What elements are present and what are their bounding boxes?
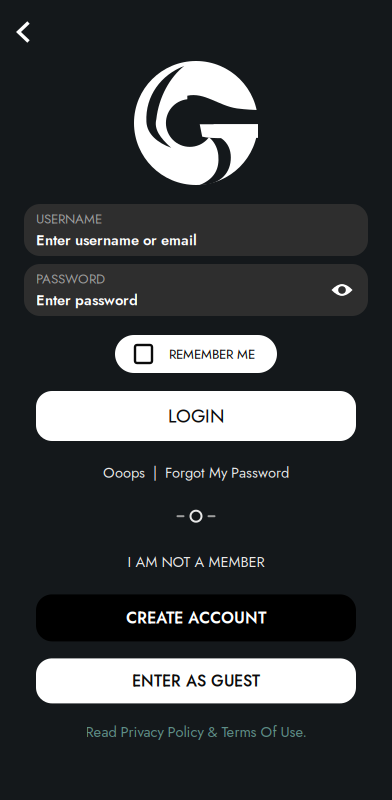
staticText: Enter password [36,289,138,311]
button[interactable]: CREATE ACCOUNT [36,594,356,641]
staticText: I AM NOT A MEMBER [127,551,264,572]
button[interactable]: Back [0,14,42,50]
staticText: ENTER AS GUEST [132,669,260,692]
staticText: Read Privacy Policy & Terms Of Use. [85,721,306,743]
staticText: Enter username or email [36,229,197,251]
staticText: Ooops | Forgot My Password [103,462,289,483]
staticText: REMEMBER ME [169,344,255,364]
staticText: USERNAME [36,209,102,229]
staticText: PASSWORD [36,269,105,289]
staticText: CREATE ACCOUNT [126,606,266,629]
staticText: LOGIN [168,402,224,429]
button[interactable]: USERNAME [24,204,368,256]
button[interactable]: REMEMBER ME [115,335,277,373]
button[interactable]: Read Privacy Policy & Terms Of Use. [85,721,306,743]
button[interactable]: PASSWORD [24,264,368,316]
button[interactable]: LOGIN [36,391,356,441]
button[interactable]: Ooops | Forgot My Password [103,462,289,483]
button[interactable]: ENTER AS GUEST [36,658,356,703]
